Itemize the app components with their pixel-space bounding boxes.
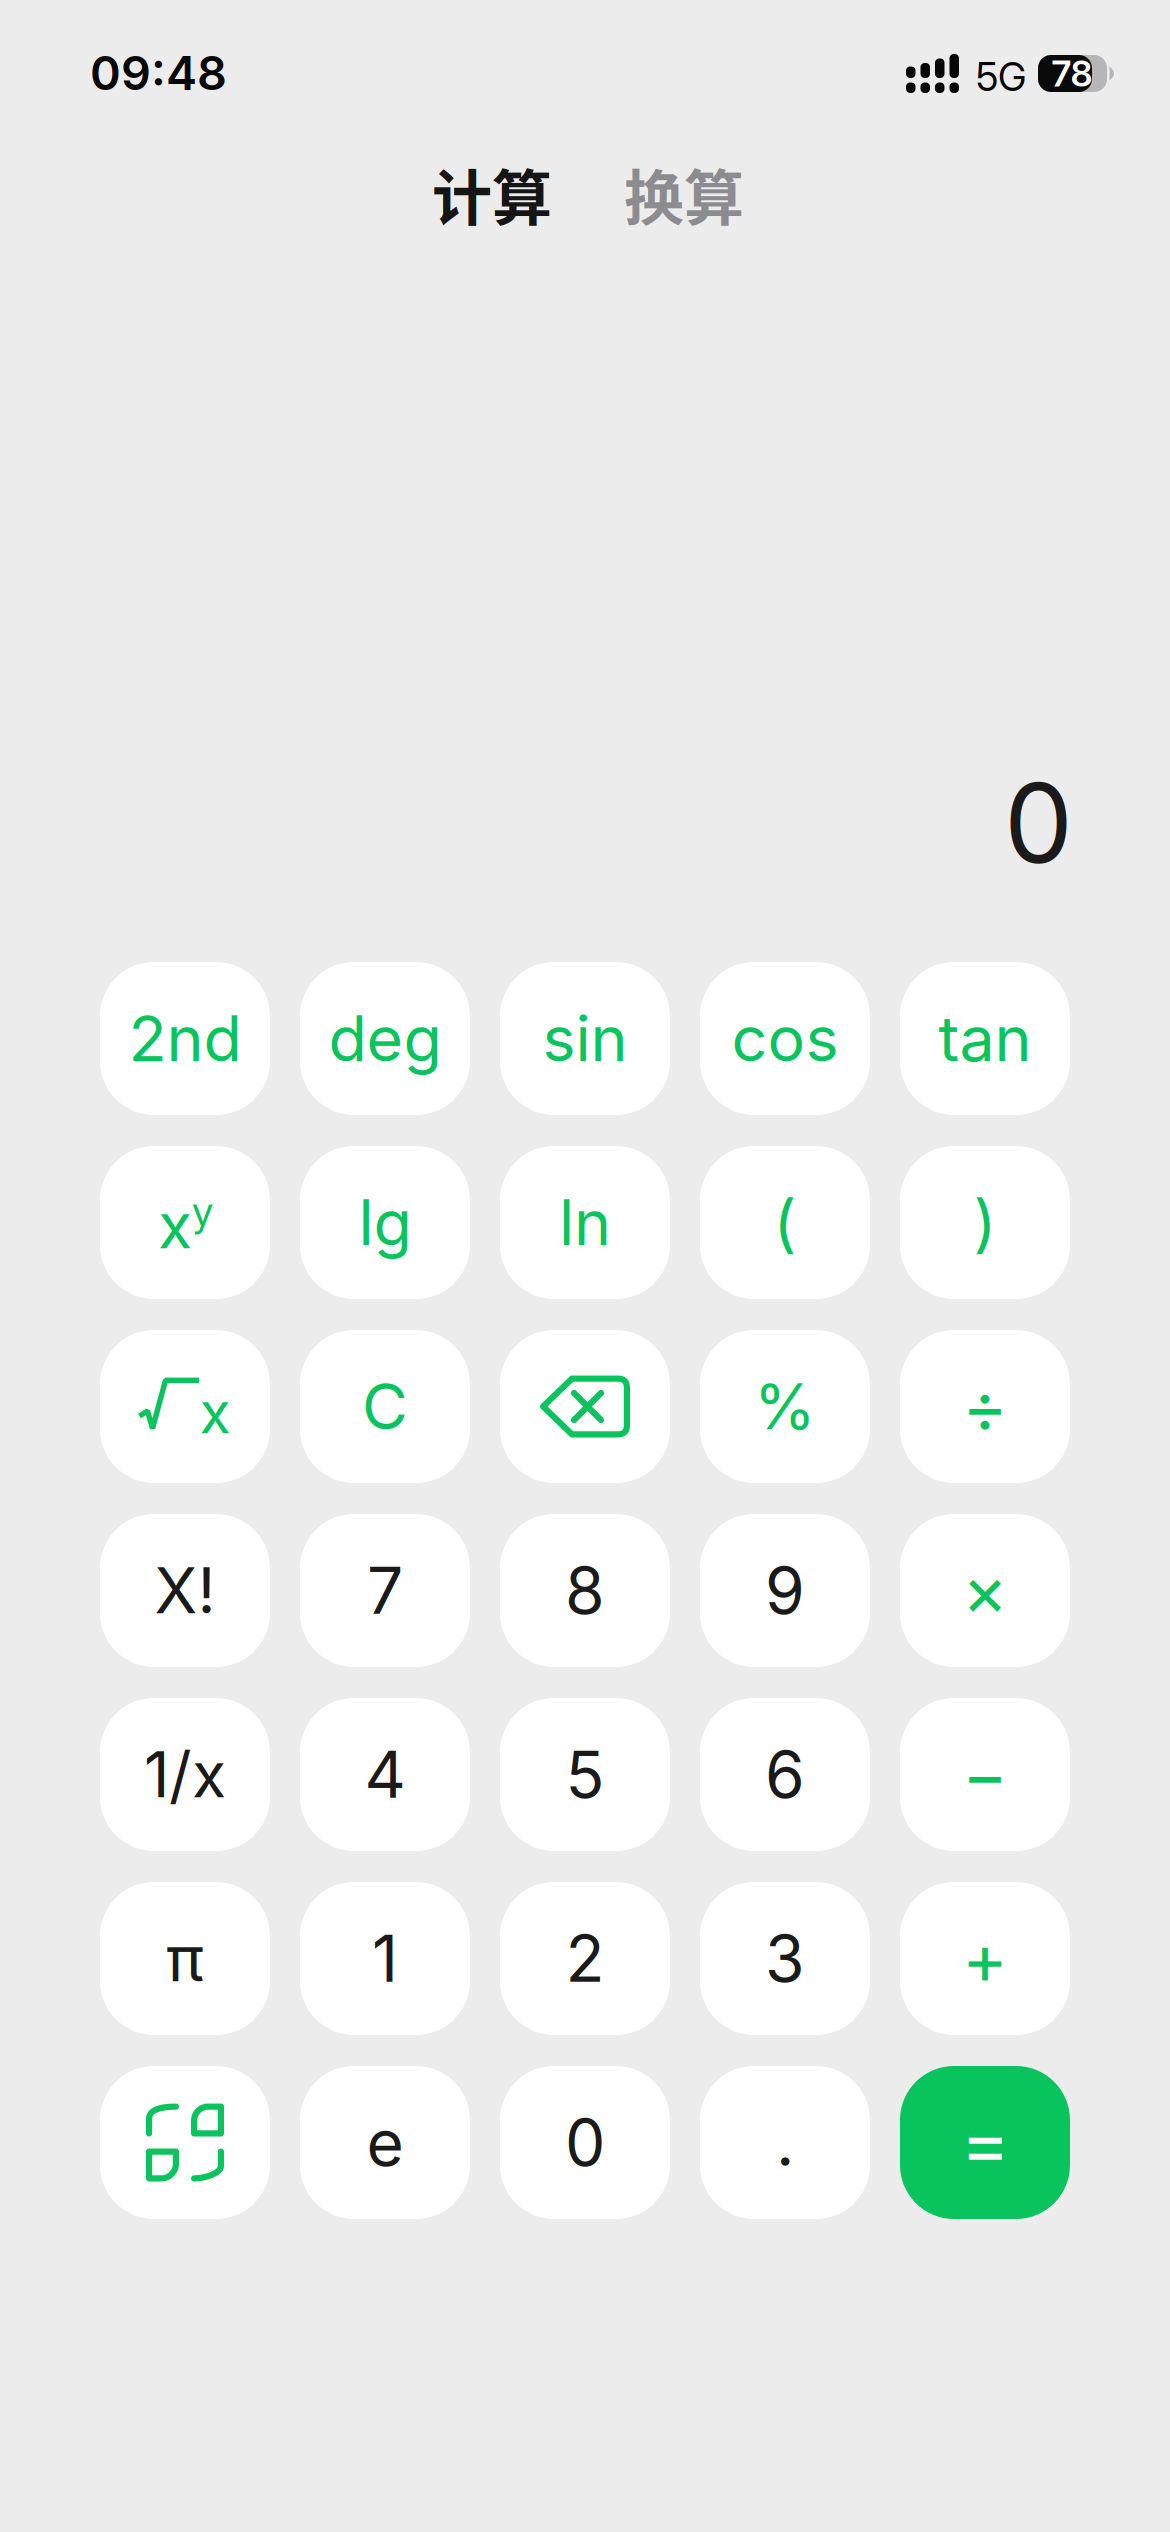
button[interactable]: sin [500,962,670,1115]
button[interactable]: 换算 [624,154,774,234]
staticText: . [776,2104,794,2181]
button[interactable]: . [700,2066,870,2219]
staticText: 2nd [128,1001,241,1076]
staticText: ln [559,1185,611,1260]
staticText: = [960,2097,1009,2188]
button[interactable]: 4 [300,1698,470,1851]
staticText: 计算 [432,151,552,237]
staticText: − [962,1733,1008,1816]
button[interactable]: ÷ [900,1330,1070,1483]
button[interactable]: ( [700,1146,870,1299]
button[interactable]: 1 [300,1882,470,2035]
staticText: 3 [765,1920,805,1997]
staticText: 1 [372,1920,398,1997]
button[interactable]: x [100,1146,270,1299]
staticText: sin [542,1001,627,1076]
staticText: 7 [367,1552,403,1629]
button[interactable]: 1/x [100,1698,270,1851]
button[interactable]: Delete [500,1330,670,1483]
button[interactable]: deg [300,962,470,1115]
button[interactable]: 计算 [402,154,552,234]
button[interactable]: + [900,1882,1070,2035]
button[interactable]: 2nd [100,962,270,1115]
staticText: 5 [565,1736,604,1813]
button[interactable]: 9 [700,1514,870,1667]
button[interactable]: x [100,1330,270,1483]
button[interactable]: 6 [700,1698,870,1851]
staticText: 78 [1051,52,1092,95]
staticText: 1/x [144,1737,226,1812]
button[interactable]: 3 [700,1882,870,2035]
staticText: C [362,1369,408,1444]
staticText: tan [938,1001,1031,1076]
staticText: + [962,1917,1008,2000]
button[interactable]: 8 [500,1514,670,1667]
staticText: 0 [1004,757,1073,889]
staticText: 换算 [624,151,744,237]
staticText: 6 [765,1736,805,1813]
staticText: ) [973,1185,996,1260]
button[interactable]: 5 [500,1698,670,1851]
staticText: 8 [565,1552,605,1629]
staticText: x [158,1188,192,1263]
staticText: ÷ [962,1365,1008,1448]
button[interactable]: − [900,1698,1070,1851]
button[interactable]: ) [900,1146,1070,1299]
staticText: 9 [765,1552,805,1629]
button[interactable]: × [900,1514,1070,1667]
staticText: x [199,1378,230,1447]
staticText: deg [328,1001,441,1076]
staticText: y [192,1186,213,1236]
button[interactable]: X! [100,1514,270,1667]
staticText: 0 [565,2104,605,2181]
button[interactable]: Scan equation [100,2066,270,2219]
staticText: lg [358,1185,411,1260]
staticText: 5G [976,54,1026,100]
button[interactable]: lg [300,1146,470,1299]
staticText: π [166,1921,204,1996]
staticText: 09:48 [90,45,227,101]
button[interactable]: ln [500,1146,670,1299]
button[interactable]: % [700,1330,870,1483]
staticText: cos [731,1001,838,1076]
staticText: % [754,1369,816,1444]
staticText: × [962,1549,1008,1632]
staticText: ( [773,1185,796,1260]
button[interactable]: π [100,1882,270,2035]
staticText: 4 [364,1736,405,1813]
staticText: 2 [565,1920,604,1997]
button[interactable]: C [300,1330,470,1483]
button[interactable]: = [900,2066,1070,2219]
button[interactable]: tan [900,962,1070,1115]
button[interactable]: 2 [500,1882,670,2035]
staticText: X! [154,1553,215,1628]
button[interactable]: e [300,2066,470,2219]
button[interactable]: 7 [300,1514,470,1667]
button[interactable]: cos [700,962,870,1115]
button[interactable]: 0 [500,2066,670,2219]
staticText: e [366,2104,403,2181]
